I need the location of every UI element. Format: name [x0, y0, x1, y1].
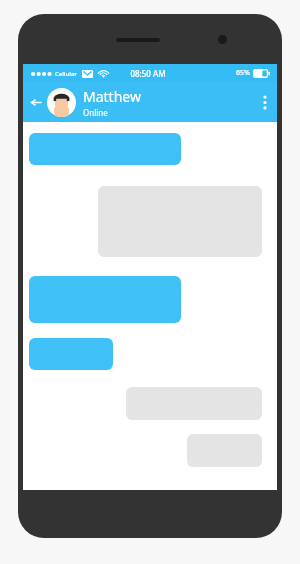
staticText: Online	[83, 107, 108, 118]
staticText: Matthew	[83, 87, 141, 106]
button[interactable]: Back	[27, 93, 45, 111]
button[interactable]: Matthew	[47, 87, 141, 118]
staticText: Cellular	[55, 70, 77, 78]
button[interactable]: More options	[257, 87, 273, 117]
staticText: 08:50 AM	[130, 68, 166, 79]
staticText: 65%	[236, 68, 250, 78]
button[interactable]	[29, 276, 181, 323]
button[interactable]	[29, 338, 113, 370]
button[interactable]	[29, 133, 181, 165]
